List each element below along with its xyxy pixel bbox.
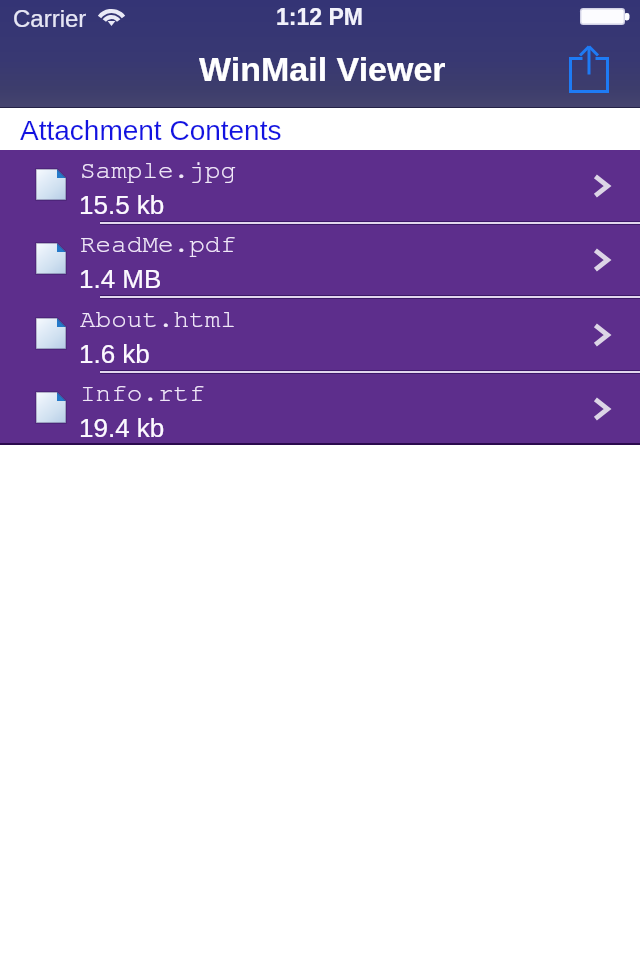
staticText: About.html — [80, 306, 237, 332]
button[interactable]: Share — [556, 36, 622, 102]
staticText: Info.rtf — [80, 380, 205, 406]
staticText: 1.4 MB — [79, 264, 162, 293]
staticText: Sample.jpg — [80, 157, 237, 183]
button[interactable]: ReadMe.pdf — [0, 224, 640, 298]
staticText: 15.5 kb — [79, 190, 165, 219]
button[interactable]: Sample.jpg — [0, 150, 640, 224]
button[interactable]: Info.rtf — [0, 373, 640, 447]
staticText: 1:12 PM — [276, 4, 363, 30]
staticText: 19.4 kb — [79, 413, 165, 442]
staticText: WinMail Viewer — [199, 50, 446, 88]
staticText: Attachment Contents — [20, 115, 282, 146]
staticText: Carrier — [13, 5, 87, 32]
staticText: 1.6 kb — [79, 339, 150, 368]
button[interactable]: About.html — [0, 299, 640, 373]
staticText: ReadMe.pdf — [80, 231, 237, 257]
